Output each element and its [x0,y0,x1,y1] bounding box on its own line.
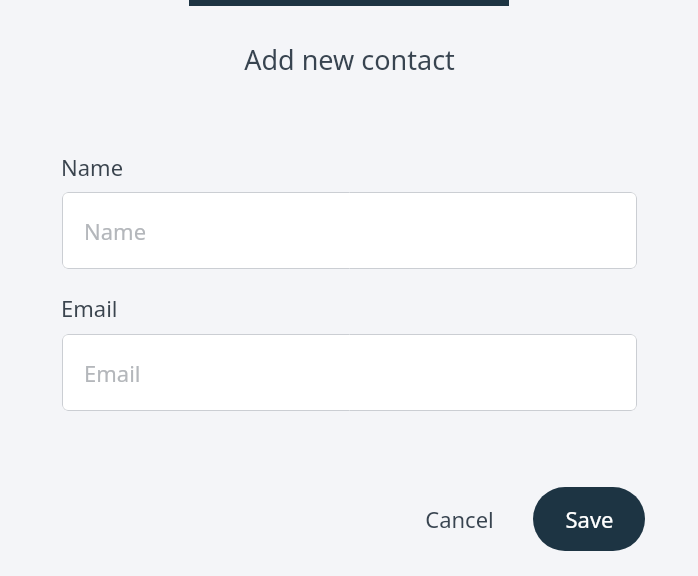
staticText: Name [61,152,124,182]
staticText: Save [565,504,614,534]
staticText: Email [84,358,141,388]
button[interactable]: Save [533,487,645,551]
staticText: Name [84,216,147,246]
staticText: Add new contact [244,41,455,75]
staticText: Cancel [425,504,494,534]
staticText: Email [61,293,118,323]
button[interactable]: Cancel [405,489,513,549]
button[interactable]: Name [62,192,637,269]
button[interactable]: Email [62,334,637,411]
